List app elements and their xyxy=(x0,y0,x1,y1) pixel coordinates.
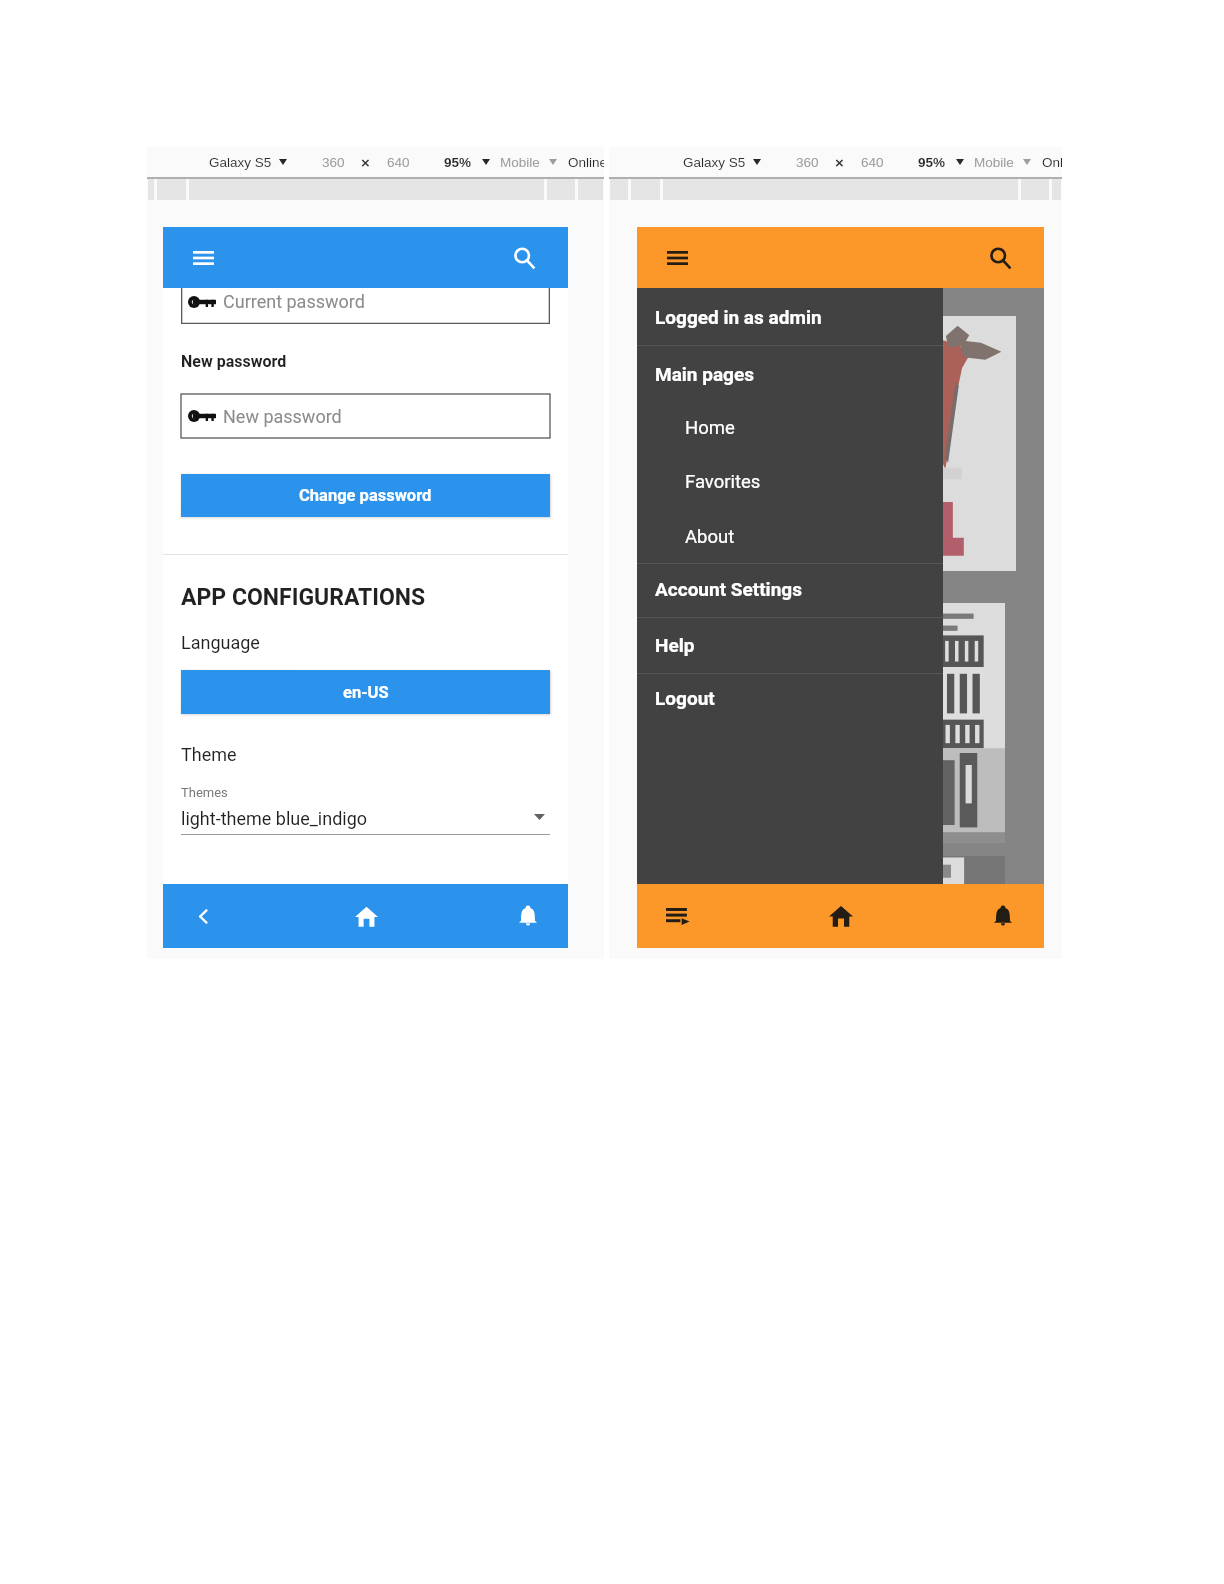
staticText: × xyxy=(835,154,844,171)
staticText: 95% xyxy=(918,155,946,170)
staticText: 640 xyxy=(387,155,410,170)
staticText: Help xyxy=(655,634,695,656)
button[interactable]: Playlist xyxy=(654,892,702,940)
staticText: Current password xyxy=(223,291,365,312)
staticText: 360 xyxy=(322,155,345,170)
button[interactable]: Main pages xyxy=(637,346,943,401)
button[interactable]: Notifications xyxy=(979,892,1027,940)
button[interactable]: Notifications xyxy=(504,892,552,940)
staticText: × xyxy=(361,154,370,171)
staticText: Logged in as admin xyxy=(655,306,822,328)
staticText: Online xyxy=(1042,155,1062,170)
button[interactable]: Logged in as admin xyxy=(637,288,943,345)
staticText: Account Settings xyxy=(655,578,802,600)
staticText: APP CONFIGURATIONS xyxy=(181,584,426,611)
staticText: Home xyxy=(685,417,735,439)
button[interactable]: Logout xyxy=(637,670,943,726)
staticText: Favorites xyxy=(685,471,761,493)
button[interactable]: Search xyxy=(503,237,545,279)
staticText: Logout xyxy=(655,687,715,709)
staticText: 95% xyxy=(444,155,472,170)
staticText: 640 xyxy=(861,155,884,170)
staticText: New password xyxy=(223,406,342,427)
staticText: Themes xyxy=(181,785,228,800)
staticText: Language xyxy=(181,632,260,653)
staticText: 360 xyxy=(796,155,819,170)
button[interactable]: Home xyxy=(342,892,390,940)
staticText: en-US xyxy=(343,683,389,702)
button[interactable]: Home xyxy=(637,401,943,455)
staticText: light-theme blue_indigo xyxy=(181,808,368,829)
staticText: Change password xyxy=(299,486,432,505)
button[interactable]: Account Settings xyxy=(637,562,943,616)
button[interactable]: Change password xyxy=(181,474,550,517)
staticText: Galaxy S5 xyxy=(683,155,746,170)
staticText: Mobile xyxy=(974,155,1014,170)
button[interactable]: Menu xyxy=(182,237,224,279)
button[interactable]: Home xyxy=(817,892,865,940)
staticText: Theme xyxy=(181,744,237,765)
staticText: Mobile xyxy=(500,155,540,170)
staticText: Online xyxy=(568,155,604,170)
button[interactable]: About xyxy=(637,509,943,564)
staticText: New password xyxy=(181,352,287,371)
button[interactable]: Help xyxy=(637,617,943,673)
button[interactable]: en-US xyxy=(181,670,550,714)
button[interactable]: Back xyxy=(179,892,227,940)
button[interactable]: Favorites xyxy=(637,454,943,509)
staticText: Galaxy S5 xyxy=(209,155,272,170)
staticText: About xyxy=(685,526,735,548)
button[interactable]: Menu xyxy=(656,237,698,279)
button[interactable]: Search xyxy=(979,237,1021,279)
staticText: Main pages xyxy=(655,363,755,385)
